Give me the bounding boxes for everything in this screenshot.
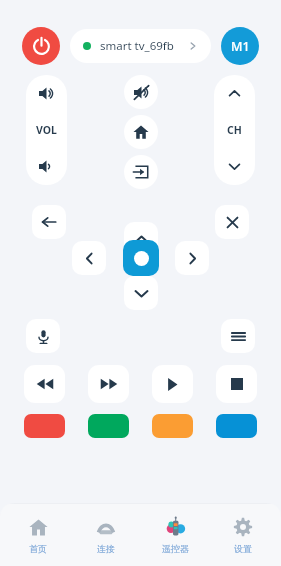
button[interactable]: Fast forward: [88, 365, 129, 403]
button[interactable]: 首页: [7, 503, 69, 566]
button[interactable]: Input source: [124, 155, 158, 189]
button[interactable]: 连接: [75, 503, 137, 566]
button[interactable]: CH down: [214, 148, 255, 185]
button[interactable]: Stop: [216, 365, 257, 403]
button[interactable]: Rewind: [24, 365, 65, 403]
staticText: 遥控器: [162, 543, 189, 554]
button[interactable]: Close: [215, 205, 249, 239]
staticText: smart tv_69fb: [100, 38, 174, 54]
button[interactable]: Down: [124, 276, 158, 310]
button[interactable]: CH up: [214, 75, 255, 111]
button[interactable]: OK: [123, 240, 159, 276]
staticText: M1: [231, 38, 250, 55]
button[interactable]: Left: [72, 241, 106, 275]
staticText: VOL: [36, 123, 57, 137]
button[interactable]: Right: [175, 241, 209, 275]
button[interactable]: Yellow: [152, 414, 193, 438]
button[interactable]: Menu: [221, 319, 255, 353]
button[interactable]: 设置: [212, 503, 274, 566]
button[interactable]: Voice search: [26, 319, 60, 353]
staticText: 首页: [29, 543, 47, 554]
staticText: CH: [227, 123, 242, 137]
button[interactable]: Play: [152, 365, 193, 403]
button[interactable]: VOL down: [26, 148, 67, 185]
staticText: 连接: [97, 543, 115, 554]
button[interactable]: M1: [221, 27, 259, 65]
button[interactable]: 遥控器: [144, 503, 206, 566]
button[interactable]: Mute: [124, 75, 158, 109]
button[interactable]: Blue: [216, 414, 257, 438]
button[interactable]: Power: [22, 27, 60, 65]
button[interactable]: Home: [124, 115, 158, 149]
button[interactable]: VOL up: [26, 75, 67, 111]
button[interactable]: Back: [32, 205, 66, 239]
button[interactable]: smart tv_69fb: [70, 29, 211, 63]
button[interactable]: Red: [24, 414, 65, 438]
button[interactable]: Green: [88, 414, 129, 438]
button[interactable]: Up: [124, 222, 158, 256]
staticText: 设置: [234, 543, 252, 554]
